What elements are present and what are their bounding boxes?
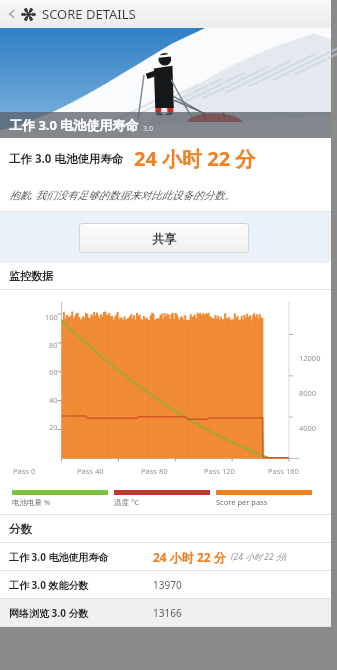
staticText: 20 [49, 422, 58, 432]
staticText: 工作 3.0 电池使用寿命 [9, 116, 139, 134]
staticText: 工作 3.0 效能分数 [9, 578, 89, 592]
staticText: 12000 [299, 353, 321, 363]
staticText: 电池电量 % [12, 497, 51, 507]
staticText: 13166 [153, 606, 182, 620]
staticText: Score per pass [216, 497, 268, 507]
staticText: (24 小时 22 分) [231, 551, 287, 563]
staticText: Pass 120 [204, 466, 235, 476]
staticText: 分数 [9, 522, 32, 536]
staticText: 24 小时 22 分 [134, 145, 256, 172]
staticText: 监控数据 [9, 269, 53, 283]
staticText: Pass 40 [77, 466, 104, 476]
staticText: Pass 80 [141, 466, 168, 476]
staticText: 13970 [153, 578, 182, 592]
staticText: 工作 3.0 电池使用寿命 [9, 550, 109, 564]
button[interactable]: Back [3, 1, 21, 27]
button[interactable]: 工作 3.0 效能分数 [0, 571, 331, 598]
button[interactable]: 网络浏览 3.0 分数 [0, 599, 331, 626]
staticText: 80 [49, 340, 58, 350]
staticText: 40 [49, 395, 58, 405]
staticText: SCORE DETAILS [42, 5, 136, 23]
button[interactable]: 工作 3.0 电池使用寿命 [0, 543, 331, 570]
staticText: 共享 [152, 231, 176, 246]
staticText: 网络浏览 3.0 分数 [9, 606, 89, 620]
staticText: 温度 °C [114, 497, 139, 507]
staticText: 4000 [299, 423, 317, 433]
staticText: 100 [45, 312, 58, 322]
staticText: Pass 0 [13, 466, 36, 476]
staticText: Pass 160 [268, 466, 299, 476]
staticText: 工作 3.0 电池使用寿命 [9, 151, 124, 167]
button[interactable]: 共享 [79, 223, 249, 253]
staticText: 24 小时 22 分 [153, 549, 226, 565]
staticText: 抱歉, 我们没有足够的数据来对比此设备的分数。 [9, 188, 235, 202]
staticText: 8000 [299, 388, 317, 398]
staticText: 3.0 [143, 124, 153, 134]
staticText: 60 [49, 367, 58, 377]
